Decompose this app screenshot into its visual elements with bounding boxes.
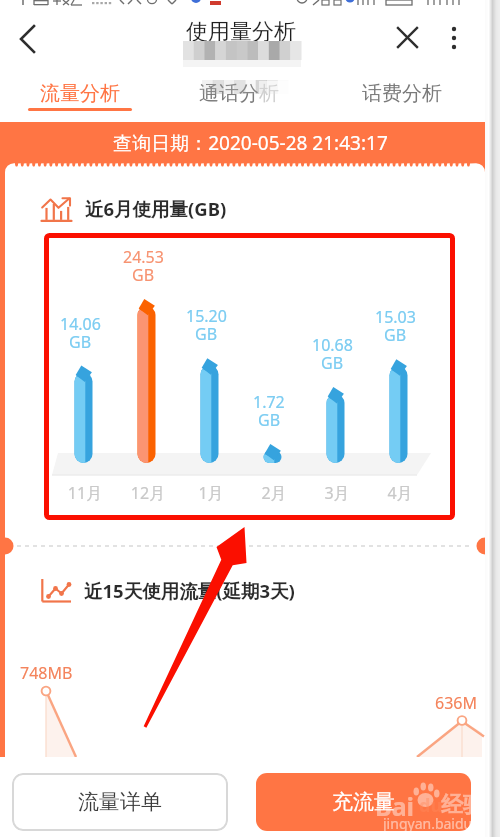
button[interactable]: Close <box>386 17 428 59</box>
staticText: 11月 <box>55 482 115 504</box>
staticText: 14.06 <box>60 313 101 335</box>
staticText: 查询日期：2020-05-28 21:43:17 <box>7 130 494 156</box>
button[interactable]: 话费分析 <box>327 70 477 122</box>
staticText: 3月 <box>307 482 367 504</box>
staticText: 1月 <box>181 482 241 504</box>
staticText: 近15天使用流量(延期3天) <box>84 578 295 603</box>
staticText: 经验 <box>441 791 485 819</box>
button[interactable]: 流量分析 <box>5 70 155 122</box>
staticText: 话费分析 <box>362 81 442 106</box>
staticText: 2月 <box>244 482 304 504</box>
staticText: 1.72 <box>253 391 285 413</box>
staticText: 充流量 <box>332 789 395 815</box>
staticText: GB <box>384 324 407 346</box>
staticText: 流量分析 <box>40 81 120 106</box>
staticText: 流量详单 <box>78 789 162 815</box>
button[interactable]: More options <box>436 17 472 53</box>
staticText: jingyan.baidu.com <box>383 814 500 833</box>
staticText: GB <box>195 323 218 345</box>
staticText: Bai <box>375 789 415 823</box>
staticText: 748MB <box>20 662 73 684</box>
button[interactable]: 通话分析 <box>164 70 314 122</box>
staticText: 4月 <box>370 482 430 504</box>
staticText: 24.53 <box>123 246 164 268</box>
staticText: 通话分析 <box>199 81 279 106</box>
staticText: 15.03 <box>375 306 416 328</box>
staticText: GB <box>69 331 92 353</box>
staticText: 使用量分析 <box>186 18 296 46</box>
staticText: 636M <box>435 692 477 714</box>
button[interactable]: Back <box>8 16 50 58</box>
button[interactable]: 充流量 <box>256 773 471 831</box>
staticText: 15.20 <box>186 305 227 327</box>
button[interactable]: 流量详单 <box>12 773 228 831</box>
staticText: GB <box>258 409 281 431</box>
staticText: 近6月使用量(GB) <box>85 196 227 221</box>
staticText: GB <box>132 264 155 286</box>
staticText: du <box>419 793 443 818</box>
staticText: 10.68 <box>312 334 353 356</box>
staticText: 12月 <box>118 482 178 504</box>
staticText: GB <box>321 352 344 374</box>
